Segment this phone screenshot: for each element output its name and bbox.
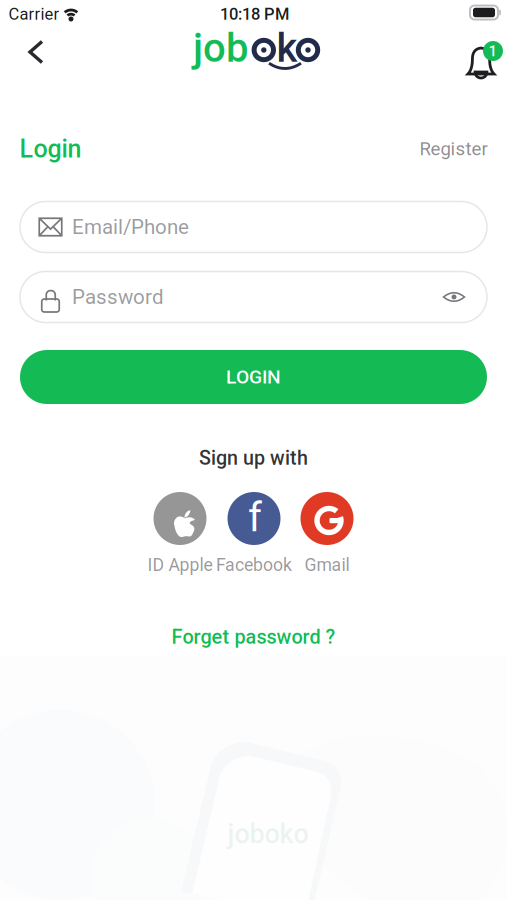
button[interactable]: Login xyxy=(19,131,81,167)
button[interactable]: Notifications xyxy=(448,26,496,74)
staticText: joboko xyxy=(227,818,308,850)
staticText: Forget password ? xyxy=(171,625,335,649)
button[interactable]: LOGIN xyxy=(20,350,487,404)
button[interactable]: Register xyxy=(419,131,487,167)
staticText: LOGIN xyxy=(226,366,281,388)
staticText: Gmail xyxy=(304,555,349,575)
staticText: job xyxy=(193,25,248,71)
button[interactable]: f xyxy=(202,489,306,581)
button[interactable]: Gmail xyxy=(275,489,379,581)
staticText: 10:18 PM xyxy=(220,4,289,24)
staticText: Facebook xyxy=(216,555,292,575)
staticText: f xyxy=(248,494,262,541)
staticText: Carrier xyxy=(8,4,59,24)
staticText: k xyxy=(276,25,297,71)
button[interactable]: Forget password ? xyxy=(128,620,378,654)
button[interactable]: ID Apple xyxy=(128,489,232,581)
staticText: Email/Phone xyxy=(72,215,189,239)
staticText: Register xyxy=(419,138,487,160)
staticText: Login xyxy=(19,134,81,164)
staticText: ID Apple xyxy=(147,555,212,575)
staticText: 1 xyxy=(488,42,497,60)
button[interactable]: Back xyxy=(13,29,59,75)
staticText: Sign up with xyxy=(199,446,308,470)
staticText: Password xyxy=(72,285,164,309)
